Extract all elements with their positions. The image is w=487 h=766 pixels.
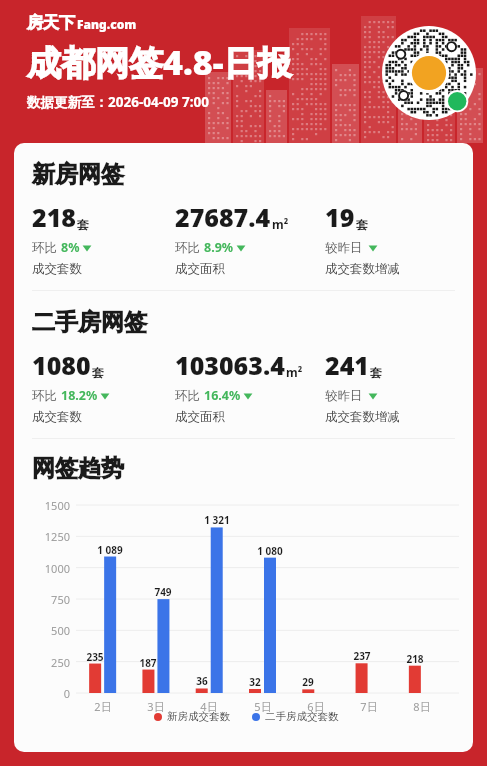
staticText: 二手房网签	[32, 308, 147, 337]
staticText: 1500	[32, 498, 70, 513]
staticText: 环比	[32, 239, 61, 256]
staticText: 1080	[32, 348, 91, 382]
staticText: 套	[77, 217, 89, 232]
staticText: 27687.4	[175, 200, 271, 234]
staticText: 1 321	[197, 513, 237, 527]
button[interactable]: 1080	[32, 348, 175, 425]
button[interactable]: 241	[325, 348, 461, 425]
staticText: 218	[32, 200, 76, 234]
button[interactable]: 19	[325, 200, 461, 277]
staticText: 19	[325, 200, 355, 234]
staticText: 较昨日	[325, 387, 366, 404]
staticText: 1 080	[250, 544, 290, 558]
staticText: 4日	[189, 699, 229, 714]
staticText: 750	[32, 592, 70, 607]
staticText: 32	[235, 675, 275, 689]
button[interactable]: 218	[32, 200, 175, 277]
button[interactable]: 二手房成交套数	[252, 710, 339, 723]
staticText: 36	[182, 674, 222, 688]
staticText: 241	[325, 348, 369, 382]
staticText: m²	[286, 364, 303, 380]
staticText: 新房成交套数	[167, 710, 230, 723]
staticText: 环比	[175, 239, 204, 256]
staticText: 2日	[83, 699, 123, 714]
staticText: 成交套数	[32, 261, 82, 277]
staticText: 成交套数增减	[325, 409, 400, 425]
staticText: 成交套数增减	[325, 261, 400, 277]
staticText: 7日	[349, 699, 389, 714]
staticText: 6日	[296, 699, 336, 714]
staticText: 网签趋势	[32, 454, 124, 483]
staticText: 成交面积	[175, 409, 225, 425]
staticText: 187	[128, 656, 168, 670]
staticText: 18.2%	[61, 387, 98, 404]
staticText: 数据更新至：2026-04-09 7:00	[27, 93, 209, 111]
staticText: 新房网签	[32, 160, 124, 189]
staticText: 3日	[136, 699, 176, 714]
button[interactable]: 扫描二维码关注房天下	[382, 26, 476, 120]
staticText: m²	[272, 216, 289, 232]
staticText: 0	[32, 686, 70, 701]
staticText: 套	[92, 365, 104, 380]
staticText: 250	[32, 655, 70, 670]
staticText: 235	[75, 650, 115, 664]
staticText: 8%	[61, 239, 80, 256]
staticText: 环比	[32, 387, 61, 404]
staticText: 237	[342, 649, 382, 663]
staticText: 8日	[402, 699, 442, 714]
staticText: 房天下	[27, 13, 75, 33]
button[interactable]: 新房成交套数	[154, 710, 230, 723]
staticText: 较昨日	[325, 239, 366, 256]
staticText: 套	[356, 217, 368, 232]
staticText: 500	[32, 623, 70, 638]
staticText: 16.4%	[204, 387, 241, 404]
staticText: 环比	[175, 387, 204, 404]
staticText: Fang.com	[77, 16, 137, 32]
staticText: 套	[370, 365, 382, 380]
staticText: 5日	[243, 699, 283, 714]
staticText: 749	[143, 585, 183, 599]
button[interactable]: 27687.4	[175, 200, 325, 277]
staticText: 1 089	[90, 543, 130, 557]
staticText: 成交套数	[32, 409, 82, 425]
staticText: 218	[395, 652, 435, 666]
staticText: 成都网签4.8-日报	[27, 39, 292, 85]
staticText: 成交面积	[175, 261, 225, 277]
staticText: 1000	[32, 561, 70, 576]
staticText: 29	[288, 675, 328, 689]
staticText: 103063.4	[175, 348, 285, 382]
staticText: 二手房成交套数	[265, 710, 339, 723]
button[interactable]: 103063.4	[175, 348, 325, 425]
staticText: 8.9%	[204, 239, 234, 256]
staticText: 1250	[32, 529, 70, 544]
